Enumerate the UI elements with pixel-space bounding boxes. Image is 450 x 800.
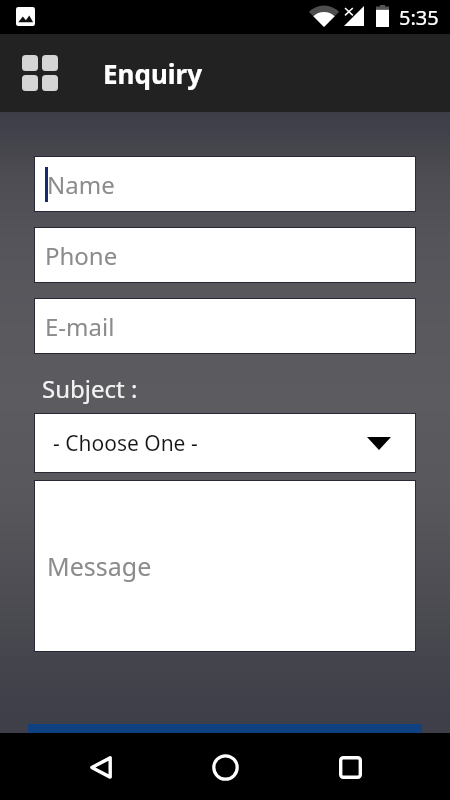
button[interactable]: Menu xyxy=(12,45,68,101)
staticText: Subject : xyxy=(42,372,138,405)
button[interactable]: Phone xyxy=(35,228,415,282)
staticText: Name xyxy=(47,168,115,201)
staticText: Message xyxy=(47,549,152,583)
staticText: E-mail xyxy=(45,310,115,343)
button[interactable]: Recents xyxy=(328,745,372,789)
button[interactable]: - Choose One - xyxy=(35,414,415,472)
staticText: 5:35 xyxy=(399,4,439,31)
staticText: Enquiry xyxy=(103,56,203,91)
staticText: - Choose One - xyxy=(53,429,198,458)
button[interactable]: Message xyxy=(35,481,415,651)
button[interactable]: Name xyxy=(35,157,415,211)
button[interactable]: Home xyxy=(203,745,247,789)
staticText: SUBMIT xyxy=(188,736,263,763)
staticText: Phone xyxy=(45,239,118,272)
button[interactable]: SUBMIT xyxy=(28,724,422,774)
button[interactable]: E-mail xyxy=(35,299,415,353)
button[interactable]: Back xyxy=(79,745,123,789)
